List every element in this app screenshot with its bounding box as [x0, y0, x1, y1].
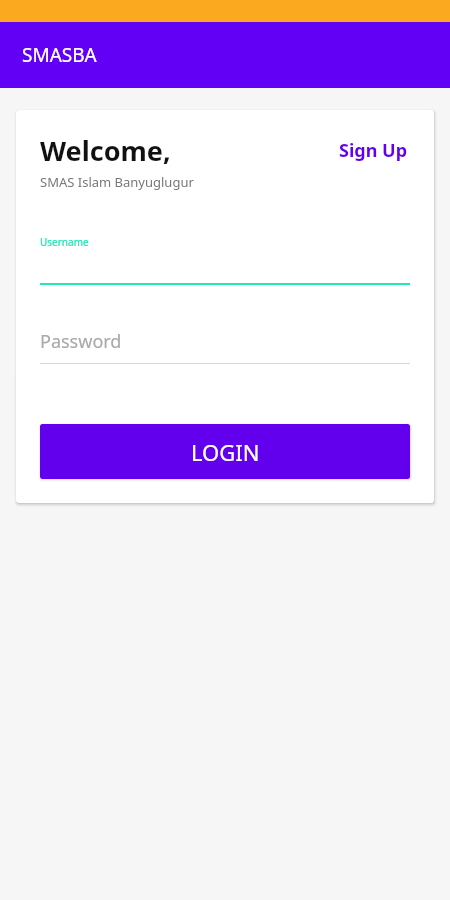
button[interactable]: Username — [40, 235, 410, 285]
staticText: Password — [40, 329, 122, 354]
staticText: Sign Up — [339, 138, 408, 163]
staticText: SMAS Islam Banyuglugur — [40, 173, 194, 191]
staticText: Username — [40, 235, 89, 249]
button[interactable]: Sign Up — [337, 134, 410, 167]
staticText: LOGIN — [191, 437, 260, 467]
staticText: SMASBA — [22, 42, 97, 68]
staticText: Welcome, — [40, 132, 171, 169]
button[interactable]: LOGIN — [40, 424, 410, 479]
button[interactable]: Password — [40, 329, 410, 364]
